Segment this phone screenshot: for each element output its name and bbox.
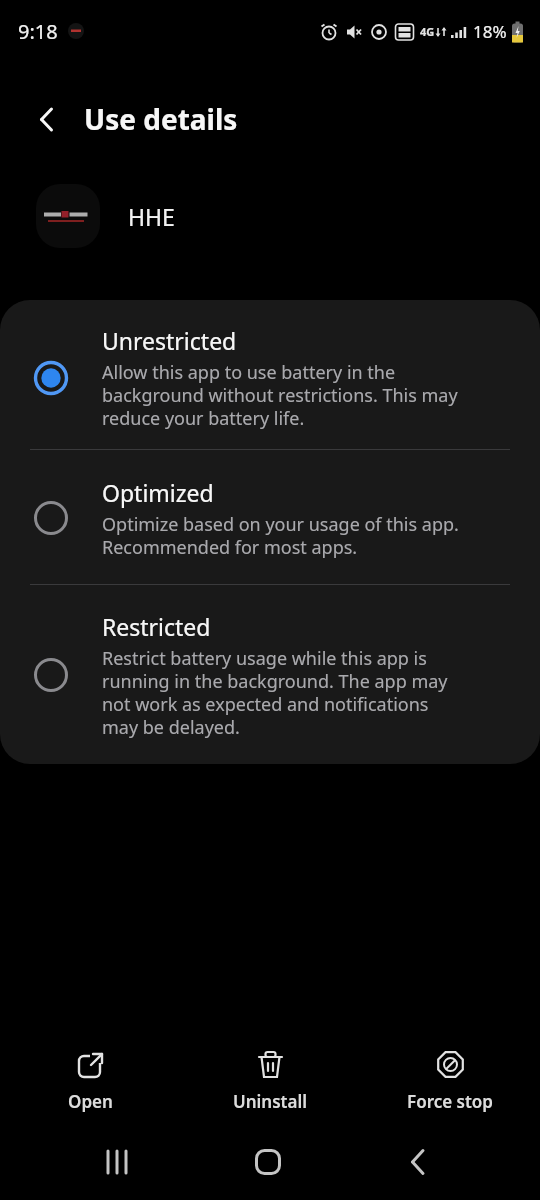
staticText: Uninstall <box>233 1090 308 1113</box>
staticText: HHE <box>128 201 175 232</box>
staticText: Force stop <box>407 1090 493 1113</box>
button[interactable]: Unrestricted <box>0 300 540 449</box>
staticText: Allow this app to use battery in the bac… <box>102 360 458 430</box>
button[interactable] <box>26 97 70 141</box>
button[interactable] <box>343 1124 493 1200</box>
staticText: Restrict battery usage while this app is… <box>102 646 448 739</box>
button[interactable]: Open <box>0 1051 180 1113</box>
staticText: Optimized <box>102 477 214 508</box>
button[interactable]: Optimized <box>0 450 540 584</box>
staticText: Use details <box>84 100 238 138</box>
staticText: Restricted <box>102 611 211 642</box>
staticText: Optimize based on your usage of this app… <box>102 512 459 559</box>
staticText: 4G <box>420 24 435 39</box>
button[interactable]: Restricted <box>0 585 540 764</box>
staticText: 18% <box>473 20 507 43</box>
staticText: Unrestricted <box>102 325 237 356</box>
button[interactable] <box>193 1124 343 1200</box>
staticText: Open <box>68 1090 113 1113</box>
button[interactable]: Uninstall <box>180 1051 360 1113</box>
button[interactable]: Force stop <box>360 1051 540 1113</box>
staticText: 9:18 <box>18 18 58 45</box>
button[interactable] <box>43 1124 193 1200</box>
